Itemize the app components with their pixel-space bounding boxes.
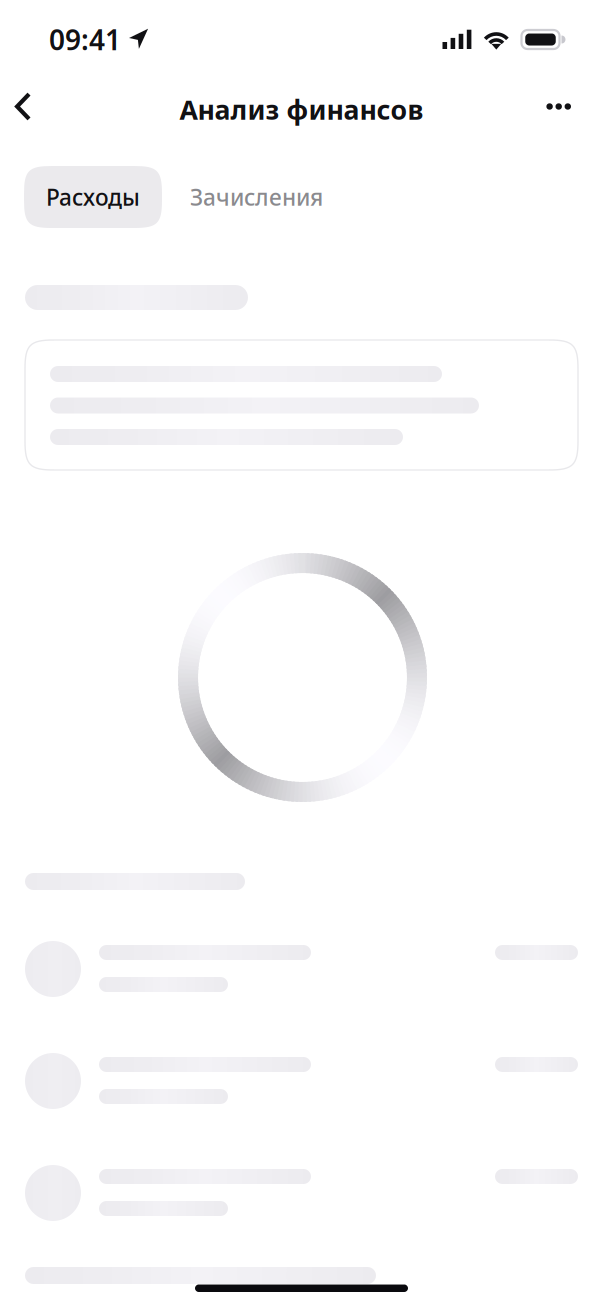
button[interactable]: Зачисления (162, 166, 351, 228)
button[interactable]: Расходы (24, 166, 162, 228)
staticText: Анализ финансов (179, 92, 423, 127)
staticText: Зачисления (190, 182, 323, 212)
staticText: 09:41 (49, 21, 121, 58)
button[interactable]: More options (532, 76, 602, 137)
staticText: Расходы (46, 182, 140, 212)
button[interactable]: Back (1, 76, 45, 137)
